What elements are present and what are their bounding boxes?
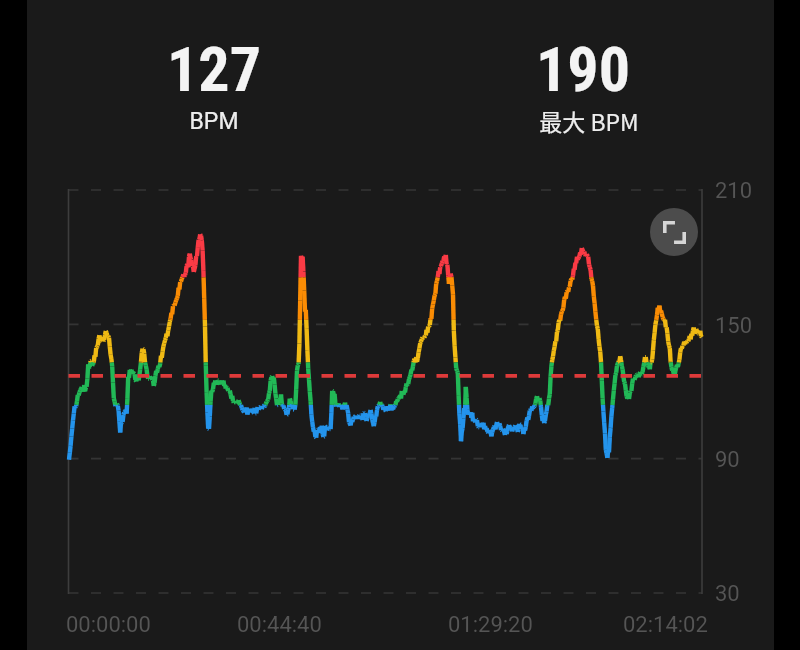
staticText: 90 (715, 447, 740, 473)
staticText: 127 (54, 33, 374, 106)
staticText: 最大 BPM (429, 104, 749, 137)
staticText: 02:14:02 (623, 612, 708, 638)
staticText: 210 (715, 178, 753, 204)
staticText: 00:00:00 (66, 612, 151, 638)
staticText: 190 (423, 33, 743, 106)
staticText: 00:44:40 (237, 612, 322, 638)
button[interactable]: Expand chart (650, 208, 698, 256)
staticText: 01:29:20 (448, 612, 533, 638)
staticText: 30 (715, 581, 740, 607)
staticText: BPM (54, 108, 374, 135)
staticText: 150 (715, 313, 753, 339)
